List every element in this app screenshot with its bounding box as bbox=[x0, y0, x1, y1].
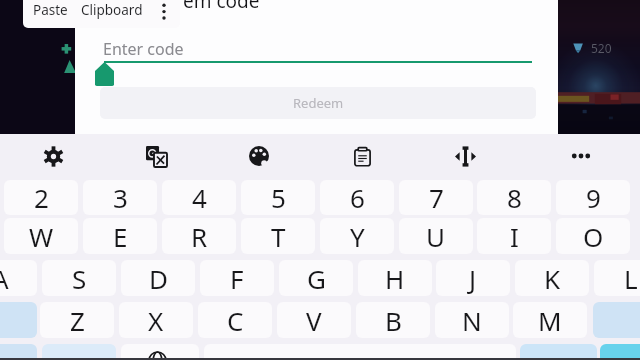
staticText: O bbox=[583, 219, 604, 254]
button[interactable]: 7 bbox=[399, 180, 473, 215]
button[interactable]: More options bbox=[151, 0, 177, 28]
staticText: L bbox=[624, 261, 638, 296]
button[interactable]: Symbols bbox=[0, 344, 37, 360]
button[interactable]: X bbox=[119, 302, 193, 338]
button[interactable]: Space bbox=[204, 344, 516, 360]
button[interactable]: Shift bbox=[0, 302, 37, 338]
staticText: A bbox=[0, 261, 9, 296]
staticText: J bbox=[469, 261, 477, 296]
button[interactable]: Text editing bbox=[443, 134, 487, 178]
staticText: X bbox=[148, 303, 164, 338]
staticText: S bbox=[72, 261, 87, 296]
button[interactable]: Translate bbox=[134, 134, 178, 178]
staticText: T bbox=[271, 219, 286, 254]
staticText: Z bbox=[70, 303, 85, 338]
staticText: C bbox=[227, 303, 244, 338]
button[interactable]: Clipboard bbox=[340, 134, 384, 178]
button[interactable]: More bbox=[559, 134, 603, 178]
button[interactable]: Backspace bbox=[593, 302, 640, 338]
staticText: E bbox=[113, 219, 128, 254]
button[interactable]: N bbox=[435, 302, 509, 338]
button[interactable]: I bbox=[477, 218, 551, 254]
button[interactable]: Clipboard bbox=[76, 0, 151, 28]
staticText: B bbox=[385, 303, 402, 338]
staticText: D bbox=[149, 261, 168, 296]
staticText: U bbox=[426, 219, 446, 254]
button[interactable]: Settings bbox=[31, 134, 75, 178]
button[interactable]: W bbox=[4, 218, 78, 254]
button[interactable]: Redeem bbox=[100, 87, 536, 119]
button[interactable]: 4 bbox=[162, 180, 236, 215]
staticText: K bbox=[544, 261, 561, 296]
button[interactable]: 2 bbox=[4, 180, 78, 215]
button[interactable]: C bbox=[198, 302, 272, 338]
staticText: 4 bbox=[192, 180, 207, 215]
button[interactable]: K bbox=[515, 260, 589, 296]
button[interactable]: E bbox=[83, 218, 157, 254]
button[interactable]: A bbox=[0, 260, 37, 296]
button[interactable]: Themes bbox=[237, 134, 281, 178]
staticText: R bbox=[191, 219, 208, 254]
button[interactable]: 3 bbox=[83, 180, 157, 215]
button[interactable]: F bbox=[200, 260, 274, 296]
staticText: M bbox=[538, 303, 562, 338]
staticText: N bbox=[462, 303, 482, 338]
button[interactable]: Z bbox=[40, 302, 114, 338]
button[interactable]: U bbox=[399, 218, 473, 254]
button[interactable]: 9 bbox=[556, 180, 630, 215]
button[interactable]: 6 bbox=[320, 180, 394, 215]
staticText: 8 bbox=[507, 180, 522, 215]
staticText: 7 bbox=[429, 180, 444, 215]
staticText: 520 bbox=[591, 40, 612, 56]
button[interactable]: L bbox=[594, 260, 640, 296]
staticText: 3 bbox=[113, 180, 128, 215]
button[interactable]: M bbox=[513, 302, 587, 338]
button[interactable]: S bbox=[42, 260, 116, 296]
staticText: F bbox=[230, 261, 244, 296]
staticText: 9 bbox=[586, 180, 601, 215]
staticText: W bbox=[29, 219, 54, 254]
button[interactable]: G bbox=[279, 260, 353, 296]
staticText: Enter code bbox=[103, 38, 184, 60]
button[interactable]: J bbox=[436, 260, 510, 296]
button[interactable]: V bbox=[277, 302, 351, 338]
staticText: I bbox=[510, 219, 519, 254]
button[interactable]: R bbox=[162, 218, 236, 254]
button[interactable]: 5 bbox=[241, 180, 315, 215]
staticText: V bbox=[306, 303, 322, 338]
button[interactable]: Period bbox=[520, 344, 597, 360]
button[interactable]: Enter bbox=[600, 344, 640, 360]
button[interactable]: Paste bbox=[23, 0, 76, 28]
staticText: em code bbox=[183, 0, 260, 14]
staticText: Redeem bbox=[293, 94, 344, 112]
button[interactable]: Emoji bbox=[42, 344, 116, 360]
staticText: 5 bbox=[271, 180, 286, 215]
button[interactable]: H bbox=[358, 260, 432, 296]
staticText: Y bbox=[350, 219, 365, 254]
button[interactable]: Language bbox=[121, 344, 199, 360]
button[interactable]: B bbox=[356, 302, 430, 338]
button[interactable]: T bbox=[241, 218, 315, 254]
staticText: Paste bbox=[33, 1, 68, 19]
button[interactable]: D bbox=[121, 260, 195, 296]
button[interactable]: Y bbox=[320, 218, 394, 254]
staticText: H bbox=[385, 261, 405, 296]
staticText: G bbox=[307, 261, 326, 296]
button[interactable]: O bbox=[556, 218, 630, 254]
staticText: 2 bbox=[34, 180, 49, 215]
staticText: 6 bbox=[350, 180, 365, 215]
button[interactable]: 8 bbox=[477, 180, 551, 215]
staticText: Clipboard bbox=[81, 1, 143, 19]
